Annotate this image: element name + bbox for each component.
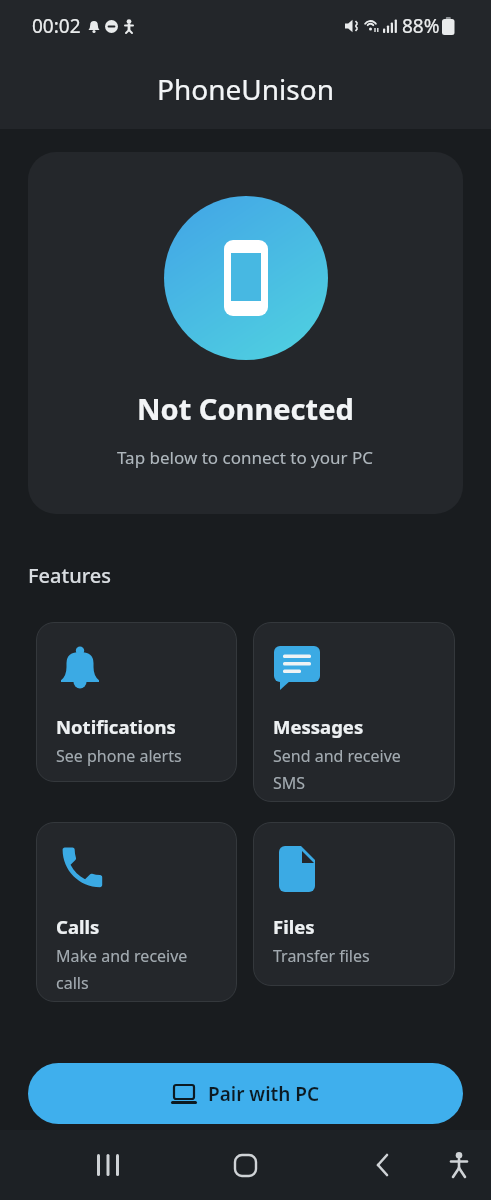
button[interactable]: Messages	[253, 622, 455, 802]
staticText: Not Connected	[137, 389, 354, 428]
staticText: Messages	[273, 714, 364, 739]
button[interactable]: Notifications	[36, 622, 237, 782]
button[interactable]	[221, 1141, 269, 1189]
staticText: See phone alerts	[56, 745, 182, 767]
button[interactable]	[435, 1141, 483, 1189]
staticText: Features	[28, 562, 111, 589]
button[interactable]: Not Connected	[28, 152, 463, 514]
staticText: 88%	[402, 13, 440, 39]
staticText: Files	[273, 914, 315, 939]
button[interactable]	[359, 1141, 407, 1189]
staticText: Tap below to connect to your PC	[117, 446, 374, 469]
staticText: Make and receive calls	[56, 945, 188, 994]
staticText: Transfer files	[273, 945, 370, 967]
staticText: Calls	[56, 914, 100, 939]
button[interactable]	[84, 1141, 132, 1189]
staticText: Notifications	[56, 714, 176, 739]
staticText: Send and receive SMS	[273, 745, 401, 794]
button[interactable]: Calls	[36, 822, 237, 1002]
button[interactable]: Files	[253, 822, 455, 986]
staticText: Pair with PC	[208, 1081, 320, 1107]
staticText: 00:02	[32, 13, 81, 39]
button[interactable]: Pair with PC	[28, 1063, 463, 1124]
staticText: PhoneUnison	[157, 70, 334, 108]
